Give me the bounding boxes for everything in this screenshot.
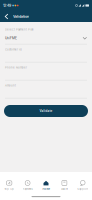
staticText: Validation [13, 14, 29, 19]
staticText: 12:49 [3, 3, 11, 8]
staticText: Phone Number [5, 66, 27, 69]
button[interactable]: Home [37, 172, 55, 200]
button[interactable]: Top Up [0, 172, 18, 200]
button[interactable]: Validate [4, 105, 88, 117]
button[interactable]: Wallet [55, 172, 74, 200]
staticText: Top Up [4, 188, 14, 191]
staticText: Select Payment Plan [5, 28, 34, 31]
staticText: Validate [39, 109, 52, 113]
button[interactable]: Payments [18, 172, 37, 200]
button[interactable]: Support [74, 172, 92, 200]
staticText: Home [42, 188, 49, 191]
staticText: Wallet [61, 188, 68, 191]
staticText: Amount [5, 84, 16, 87]
staticText: Support [77, 188, 88, 191]
staticText: Payments [23, 188, 33, 191]
button[interactable]: Back [0, 11, 13, 22]
staticText: Customer Id [5, 48, 22, 51]
staticText: UniFME [5, 36, 17, 40]
